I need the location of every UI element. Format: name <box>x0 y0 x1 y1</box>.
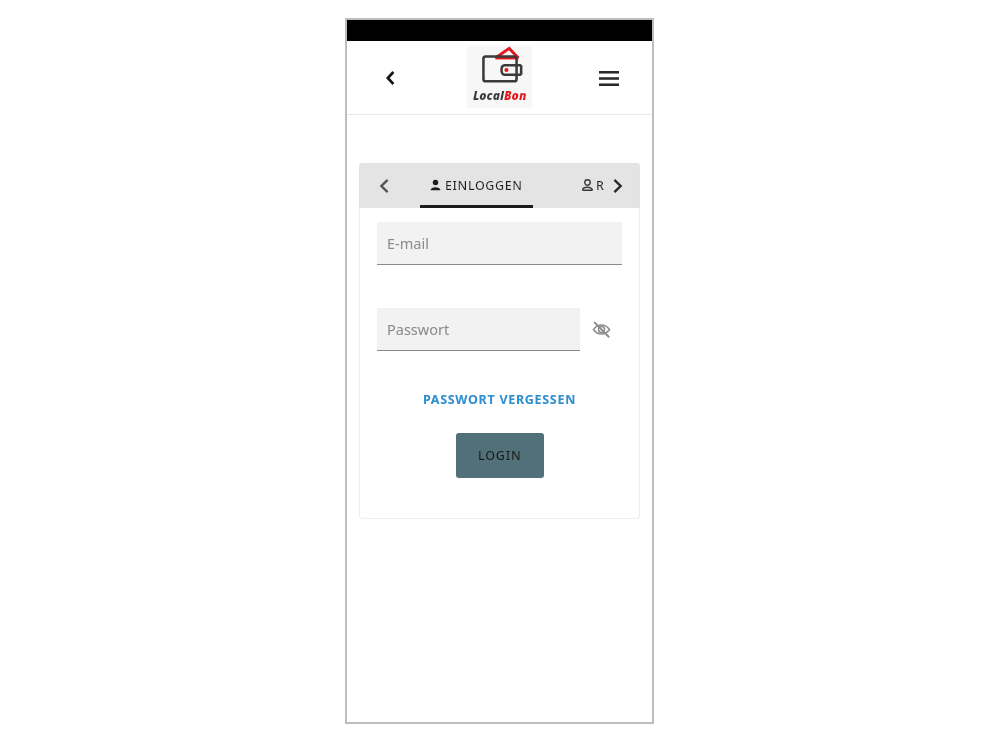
staticText: EINLOGGEN <box>445 177 523 194</box>
button[interactable]: E-mail <box>377 222 622 265</box>
button[interactable]: Next tab <box>602 163 632 208</box>
staticText: R <box>596 177 605 194</box>
staticText: E-mail <box>387 233 429 253</box>
button[interactable]: R <box>571 163 615 208</box>
button[interactable]: EINLOGGEN <box>417 163 535 208</box>
button[interactable]: LocalBon home <box>467 46 532 108</box>
staticText: LOGIN <box>478 447 522 464</box>
staticText: Local <box>473 87 504 103</box>
button[interactable]: Menu <box>587 56 631 100</box>
staticText: PASSWORT VERGESSEN <box>423 391 576 408</box>
button[interactable]: PASSWORT VERGESSEN <box>377 387 622 411</box>
button[interactable]: LOGIN <box>456 433 544 478</box>
staticText: Passwort <box>387 319 450 339</box>
button[interactable]: Passwort <box>377 308 580 351</box>
staticText: Bon <box>504 87 527 103</box>
button[interactable]: Previous tab <box>369 163 399 208</box>
button[interactable]: Back <box>369 56 413 100</box>
button[interactable]: Show password <box>580 307 622 351</box>
